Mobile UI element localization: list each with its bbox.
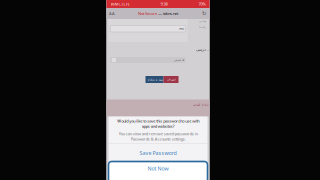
staticText: سامانه آموزشی bbox=[192, 103, 208, 106]
staticText: .. درسی bbox=[195, 46, 208, 52]
staticText: قوانین bbox=[198, 19, 205, 22]
button[interactable]: ورود به سامانه bbox=[145, 76, 163, 83]
staticText: AA bbox=[109, 11, 115, 16]
button[interactable]: Not Now bbox=[108, 161, 207, 180]
button[interactable]: Reload bbox=[198, 8, 209, 19]
staticText: ↻ bbox=[202, 10, 206, 17]
staticText: Would you like to save this password to … bbox=[117, 118, 199, 129]
staticText: راهنما bbox=[198, 25, 205, 28]
staticText: 70% bbox=[198, 1, 205, 7]
button[interactable]: Not Secure bbox=[129, 8, 187, 19]
staticText: Save Password bbox=[139, 149, 176, 157]
staticText: ١٢٣٤٥ bbox=[178, 27, 183, 30]
button[interactable]: Page settings bbox=[106, 8, 117, 19]
button[interactable]: انصراف bbox=[163, 76, 178, 83]
staticText: ورود به سامانه bbox=[147, 78, 162, 81]
button[interactable]: Save Password bbox=[108, 147, 207, 158]
staticText: کد امنیتی bbox=[173, 58, 183, 61]
staticText: 9:38 bbox=[160, 1, 167, 7]
staticText: Not Secure bbox=[138, 11, 157, 16]
staticText: — takns.net bbox=[158, 11, 178, 16]
staticText: انصراف bbox=[166, 78, 175, 81]
staticText: IR-MCI LTE bbox=[110, 1, 129, 7]
staticText: You can view and remove saved passwords … bbox=[118, 131, 197, 142]
staticText: Not Now bbox=[147, 165, 168, 172]
